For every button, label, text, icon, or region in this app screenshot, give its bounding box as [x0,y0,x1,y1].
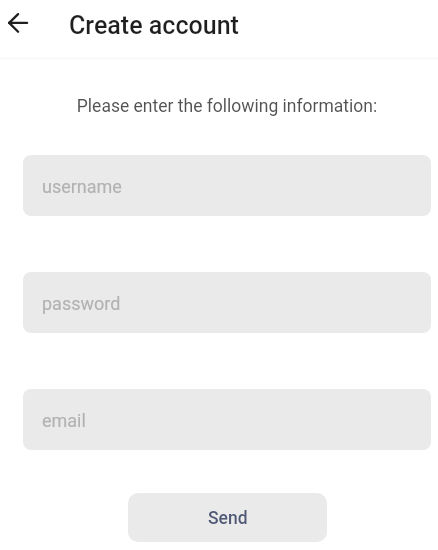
staticText: Please enter the following information: [23,96,431,117]
button[interactable]: username [23,155,431,216]
staticText: username [42,176,122,197]
staticText: Send [208,508,248,529]
button[interactable]: Send [128,493,327,542]
button[interactable]: Back [0,1,44,45]
button[interactable]: email [23,389,431,450]
staticText: email [42,410,86,431]
button[interactable]: password [23,272,431,333]
staticText: password [42,293,121,314]
staticText: Create account [69,11,239,40]
